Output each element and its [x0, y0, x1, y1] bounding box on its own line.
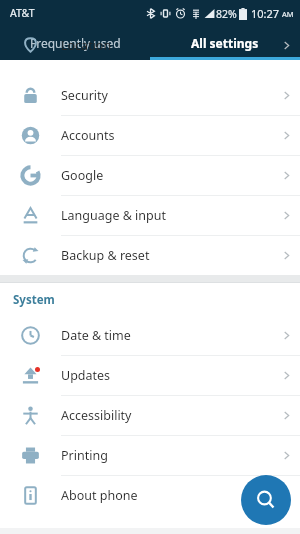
- button[interactable]: Updates: [0, 356, 300, 396]
- staticText: Google: [61, 167, 272, 184]
- button[interactable]: All settings: [150, 26, 300, 60]
- staticText: Accounts: [61, 127, 272, 144]
- staticText: Accessibility: [61, 407, 272, 424]
- button[interactable]: Backup & reset: [0, 236, 300, 275]
- button[interactable]: Location: [0, 37, 300, 53]
- button[interactable]: About phone: [0, 476, 300, 515]
- staticText: About phone: [61, 487, 272, 504]
- button[interactable]: Language & input: [0, 196, 300, 236]
- staticText: Language & input: [61, 207, 272, 224]
- staticText: Frequently used: [30, 35, 121, 51]
- button[interactable]: Accounts: [0, 116, 300, 156]
- staticText: Updates: [61, 367, 272, 384]
- staticText: All settings: [191, 35, 259, 51]
- staticText: 82%: [216, 7, 237, 21]
- staticText: Security: [61, 87, 272, 104]
- button[interactable]: Frequently used: [0, 26, 150, 60]
- staticText: Date & time: [61, 327, 272, 344]
- staticText: Location: [61, 37, 272, 53]
- button[interactable]: Printing: [0, 436, 300, 476]
- staticText: AM: [282, 9, 294, 19]
- button[interactable]: Security: [0, 76, 300, 116]
- staticText: 10:27: [251, 6, 280, 21]
- button[interactable]: Google: [0, 156, 300, 196]
- staticText: System: [13, 292, 55, 308]
- button[interactable]: Search: [241, 475, 291, 525]
- staticText: Printing: [61, 447, 272, 464]
- button[interactable]: Date & time: [0, 316, 300, 356]
- button[interactable]: Accessibility: [0, 396, 300, 436]
- staticText: Backup & reset: [61, 247, 272, 264]
- staticText: AT&T: [10, 6, 35, 20]
